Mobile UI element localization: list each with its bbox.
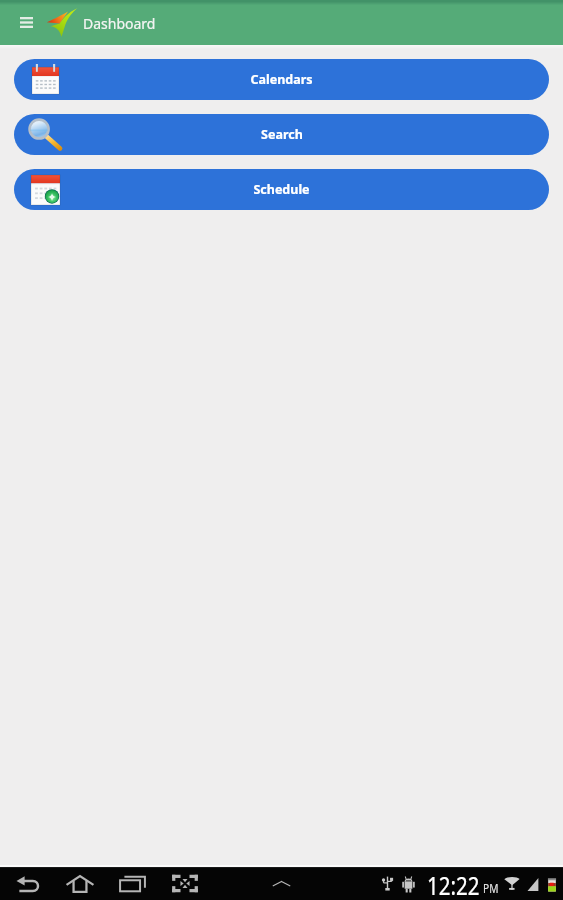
button[interactable]: Back	[16, 875, 40, 893]
staticText: PM	[483, 880, 499, 896]
staticText: 12:22	[427, 868, 479, 900]
staticText: Dashboard	[83, 14, 156, 33]
button[interactable]: Search	[14, 114, 549, 155]
staticText: Schedule	[253, 181, 310, 198]
button[interactable]: Home	[66, 875, 94, 893]
button[interactable]: Screenshot	[171, 874, 199, 893]
staticText: Search	[261, 126, 303, 143]
button[interactable]: Open navigation drawer	[11, 9, 41, 36]
staticText: Calendars	[250, 71, 313, 88]
button[interactable]: Recent apps	[119, 874, 146, 893]
button[interactable]: Expand	[270, 875, 293, 893]
button[interactable]: Schedule	[14, 169, 549, 210]
button[interactable]: Calendars	[14, 59, 549, 100]
